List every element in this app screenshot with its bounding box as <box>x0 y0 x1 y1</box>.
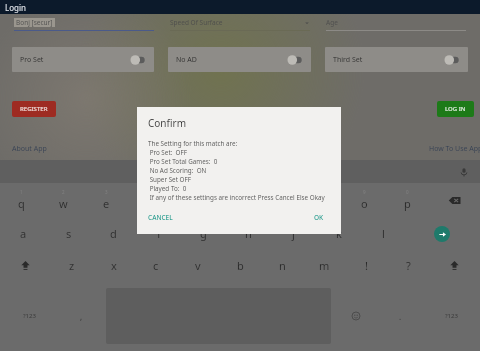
button[interactable]: REGISTER <box>12 101 56 117</box>
staticText: 0 <box>406 189 409 195</box>
button[interactable]: 3 <box>85 183 128 217</box>
staticText: s <box>66 226 72 241</box>
button[interactable]: k <box>316 217 361 250</box>
staticText: Third Set <box>333 55 363 65</box>
staticText: REGISTER <box>20 105 48 113</box>
staticText: z <box>69 258 75 273</box>
staticText: a <box>20 226 27 241</box>
button[interactable]: CANCEL <box>145 210 176 225</box>
button[interactable]: No AD <box>168 47 311 72</box>
staticText: y <box>233 196 239 211</box>
staticText: e <box>103 196 110 211</box>
button[interactable]: m <box>303 250 345 281</box>
staticText: ?123 <box>445 312 458 320</box>
staticText: No AD <box>176 55 197 65</box>
staticText: Pro Set <box>20 55 44 65</box>
staticText: p <box>404 196 411 211</box>
staticText: i <box>320 196 323 211</box>
button[interactable]: 1 <box>0 183 42 217</box>
staticText: The Setting for this match are: <box>148 139 238 148</box>
staticText: OK <box>314 213 324 222</box>
staticText: Login <box>5 2 26 13</box>
button[interactable]: Age <box>326 18 466 31</box>
staticText: 3 <box>105 189 108 195</box>
staticText: m <box>319 258 330 273</box>
button[interactable]: Backspace <box>429 183 480 217</box>
button[interactable]: s <box>46 217 91 250</box>
button[interactable]: x <box>93 250 135 281</box>
staticText: v <box>195 258 201 273</box>
button[interactable]: l <box>361 217 406 250</box>
button[interactable]: z <box>51 250 93 281</box>
staticText: k <box>336 226 342 241</box>
staticText: Played To: 0 <box>148 184 187 193</box>
button[interactable]: About App <box>8 140 51 158</box>
staticText: c <box>153 258 159 273</box>
button[interactable]: 6 <box>214 183 257 217</box>
staticText: , <box>80 311 83 322</box>
button[interactable]: Bonj [secur] <box>14 18 154 31</box>
staticText: l <box>382 226 385 241</box>
staticText: ?123 <box>23 312 36 320</box>
button[interactable]: LOG IN <box>437 101 474 117</box>
button[interactable]: OK <box>311 210 327 225</box>
button[interactable]: Shift <box>0 250 51 281</box>
button[interactable]: a <box>1 217 46 250</box>
button[interactable]: 9 <box>343 183 386 217</box>
staticText: o <box>361 196 368 211</box>
button[interactable]: 8 <box>300 183 343 217</box>
button[interactable]: Enter <box>406 217 478 250</box>
staticText: f <box>157 226 161 241</box>
staticText: j <box>292 226 295 241</box>
button[interactable]: 5 <box>171 183 214 217</box>
staticText: Pro Set Total Games: 0 <box>148 157 218 166</box>
button[interactable]: 7 <box>257 183 300 217</box>
staticText: Age <box>326 18 338 27</box>
staticText: 4 <box>148 189 151 195</box>
staticText: ? <box>406 258 411 273</box>
staticText: About App <box>12 144 47 154</box>
button[interactable]: f <box>136 217 181 250</box>
button[interactable]: Shift <box>429 250 480 281</box>
button[interactable]: d <box>91 217 136 250</box>
button[interactable]: j <box>271 217 316 250</box>
button[interactable]: b <box>219 250 261 281</box>
button[interactable]: ? <box>387 250 429 281</box>
button[interactable]: g <box>181 217 226 250</box>
staticText: w <box>59 196 68 211</box>
button[interactable]: n <box>261 250 303 281</box>
staticText: g <box>200 226 207 241</box>
button[interactable]: How To Use App <box>425 140 480 158</box>
button[interactable]: Third Set <box>325 47 468 72</box>
staticText: If any of these settings are incorrect P… <box>148 193 325 202</box>
button[interactable]: v <box>177 250 219 281</box>
button[interactable]: Pro Set <box>12 47 154 72</box>
staticText: r <box>147 196 152 211</box>
button[interactable]: Voice input <box>458 166 470 178</box>
staticText: Pro Set: OFF <box>148 148 188 157</box>
staticText: Confirm <box>148 116 187 130</box>
button[interactable]: c <box>135 250 177 281</box>
button[interactable]: Speed Of Surface <box>170 18 310 31</box>
staticText: u <box>275 196 282 211</box>
staticText: ! <box>365 258 368 273</box>
staticText: Super Set OFF <box>148 175 192 184</box>
button[interactable]: 0 <box>386 183 429 217</box>
staticText: 2 <box>62 189 65 195</box>
staticText: LOG IN <box>445 105 466 113</box>
staticText: Speed Of Surface <box>170 18 223 27</box>
button[interactable]: ! <box>345 250 387 281</box>
button[interactable]: 2 <box>42 183 85 217</box>
button[interactable]: 4 <box>128 183 171 217</box>
button[interactable]: h <box>226 217 271 250</box>
